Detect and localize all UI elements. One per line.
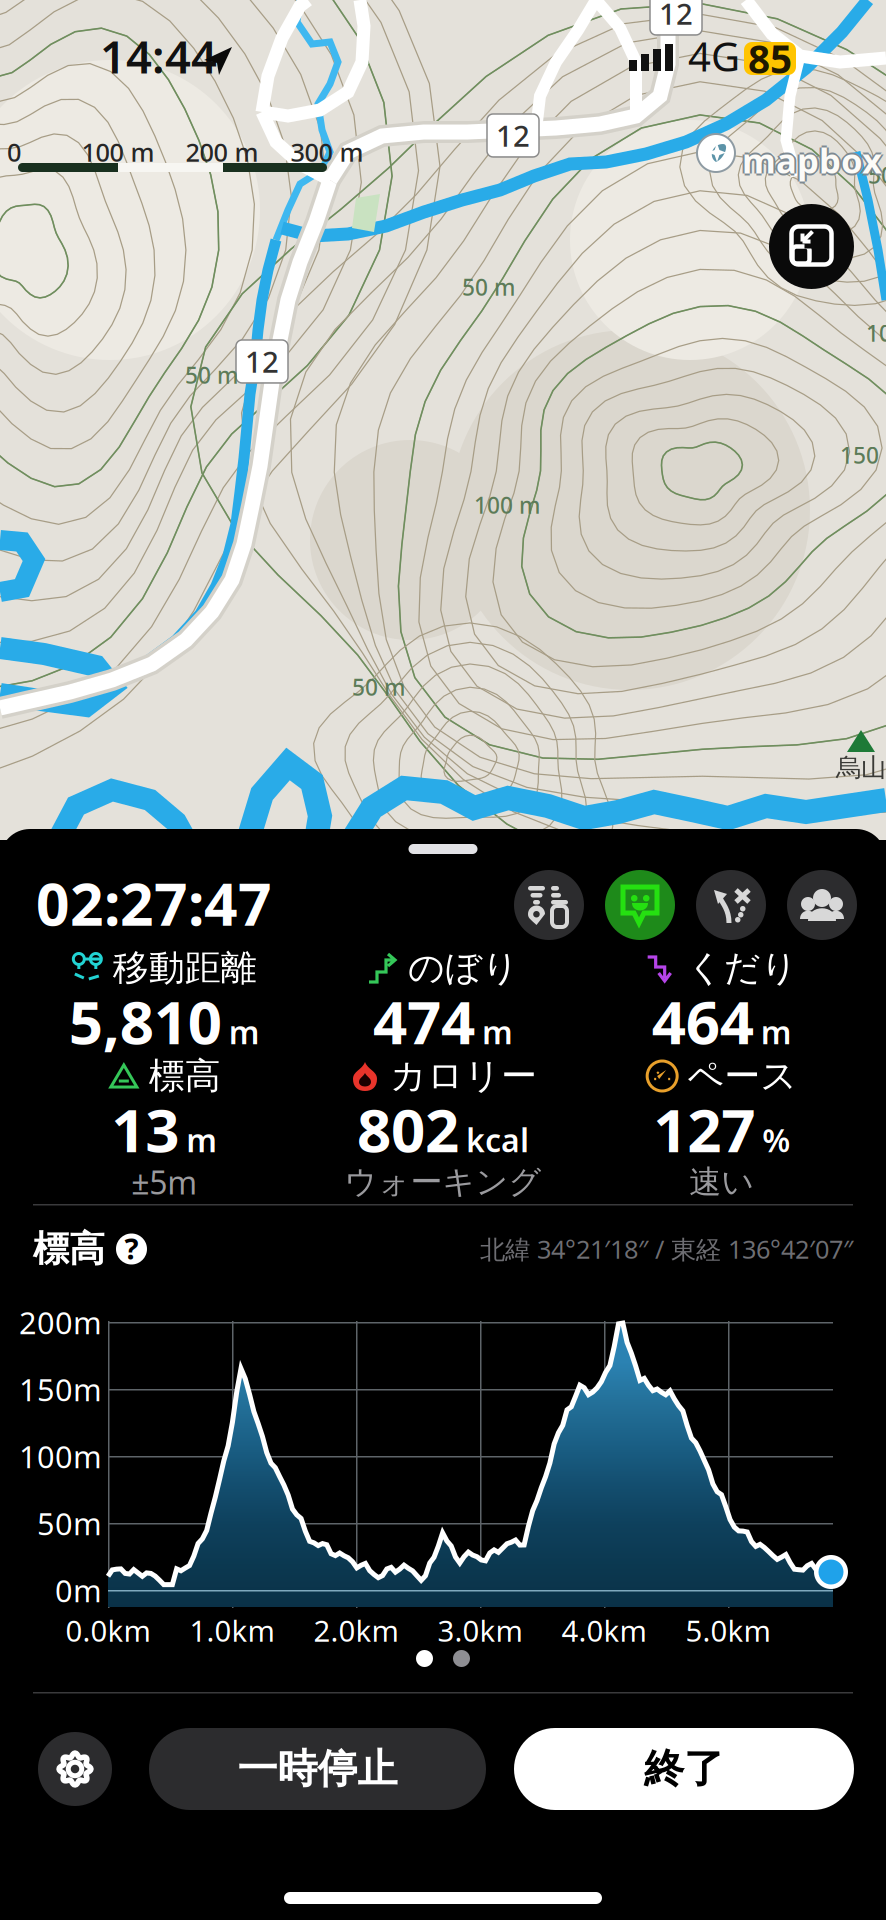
staticText: 速い (689, 1162, 754, 1202)
staticText: ペース (687, 1054, 797, 1098)
staticText: 200 m (185, 135, 258, 169)
button[interactable]: About elevation (116, 1233, 147, 1264)
staticText: 標高 (33, 1227, 105, 1271)
staticText: 3.0km (437, 1611, 522, 1650)
staticText: 0m (55, 1570, 102, 1611)
staticText: 150m (19, 1369, 102, 1410)
staticText: 474 (373, 981, 475, 1061)
staticText: m (229, 1011, 260, 1053)
staticText: 12 (659, 0, 693, 33)
staticText: 50 m (462, 272, 515, 302)
staticText: カロリー (390, 1054, 537, 1098)
staticText: 標高 (149, 1054, 221, 1098)
staticText: 4.0km (561, 1611, 646, 1650)
staticText: 300 m (290, 135, 363, 169)
staticText: のぼり (408, 946, 519, 990)
staticText: 5,810 (69, 981, 222, 1061)
staticText: 烏山 (836, 752, 886, 783)
staticText: mapbox (744, 137, 884, 183)
button[interactable]: 終了 (514, 1728, 854, 1810)
staticText: 移動距離 (113, 946, 257, 990)
staticText: m (761, 1011, 792, 1053)
staticText: mapbox (740, 137, 880, 183)
staticText: ±5m (131, 1161, 197, 1203)
staticText: 150 m (840, 440, 886, 470)
staticText: 100 (866, 318, 886, 348)
button[interactable]: Members (787, 870, 857, 940)
staticText: m (482, 1011, 513, 1053)
staticText: 14:44 (100, 26, 217, 86)
staticText: 464 (652, 981, 754, 1061)
staticText: % (762, 1119, 790, 1161)
staticText: 12 (245, 342, 279, 381)
staticText: 2.0km (313, 1611, 398, 1650)
staticText: 0 (7, 135, 21, 169)
staticText: 13 (111, 1089, 179, 1169)
staticText: mapbox (742, 137, 882, 183)
staticText: mapbox (742, 135, 882, 181)
staticText: ウォーキング (344, 1162, 541, 1202)
staticText: 50 m (185, 360, 238, 390)
staticText: 北緯 34°21′18″ / 東経 136°42′07″ (480, 1232, 853, 1266)
staticText: 802 (357, 1089, 459, 1169)
button[interactable]: 一時停止 (149, 1728, 486, 1810)
staticText: ? (124, 1228, 138, 1267)
staticText: 12 (496, 116, 530, 155)
button[interactable]: Check in (605, 870, 675, 940)
staticText: 100 m (474, 490, 540, 520)
button[interactable]: Settings (38, 1732, 112, 1806)
staticText: m (186, 1119, 217, 1161)
staticText: 終了 (644, 1744, 724, 1793)
button[interactable]: Route off course (696, 870, 766, 940)
staticText: 50 m (352, 672, 405, 702)
staticText: 0.0km (65, 1611, 150, 1650)
staticText: 一時停止 (237, 1744, 397, 1793)
staticText: くだり (687, 946, 798, 990)
staticText: mapbox (742, 139, 882, 185)
staticText: 02:27:47 (36, 864, 272, 942)
staticText: 50 (868, 160, 886, 190)
staticText: 127 (653, 1089, 755, 1169)
staticText: 100 m (81, 135, 154, 169)
staticText: 1.0km (189, 1611, 274, 1650)
staticText: kcal (466, 1119, 529, 1161)
staticText: 100m (19, 1436, 102, 1477)
staticText: 50m (37, 1503, 102, 1544)
button[interactable]: Collapse map (769, 204, 854, 289)
staticText: 5.0km (685, 1611, 770, 1650)
staticText: 200m (19, 1302, 102, 1343)
staticText: 85 (748, 33, 792, 84)
button[interactable]: Layers (514, 870, 584, 940)
staticText: 4G (688, 29, 740, 82)
